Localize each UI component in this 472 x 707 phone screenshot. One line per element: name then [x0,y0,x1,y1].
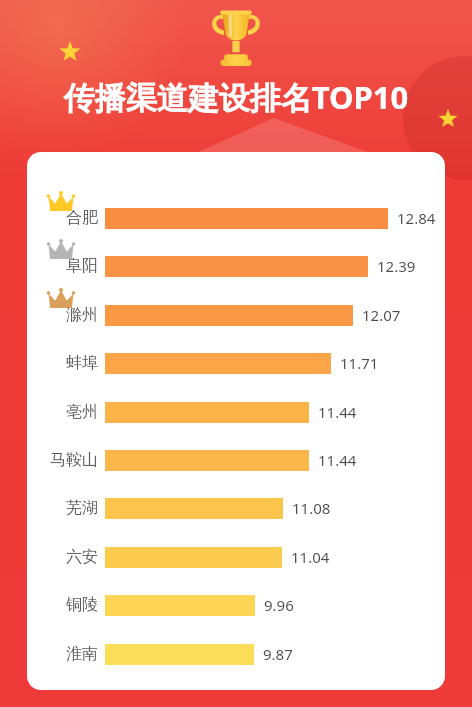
button[interactable]: 六安 [27,540,445,574]
staticText: 阜阳 [66,256,98,276]
staticText: 11.71 [340,353,379,373]
button[interactable]: 合肥 [27,152,445,690]
staticText: 12.07 [362,305,401,325]
staticText: 铜陵 [66,595,98,615]
staticText: 11.44 [318,450,357,470]
button[interactable]: 铜陵 [27,588,445,622]
other: Trophy [206,6,266,72]
staticText: 马鞍山 [50,450,98,470]
staticText: 合肥 [66,208,98,228]
button[interactable]: 芜湖 [27,491,445,525]
staticText: 芜湖 [66,498,98,518]
button[interactable]: 合肥 [27,201,445,235]
staticText: 蚌埠 [66,353,98,373]
staticText: 12.84 [397,208,436,228]
staticText: 11.08 [292,498,331,518]
staticText: 9.96 [264,595,294,615]
staticText: 12.39 [377,256,416,276]
staticText: 亳州 [66,402,98,422]
button[interactable]: 滁州 [27,298,445,332]
staticText: 11.44 [318,402,357,422]
button[interactable]: 蚌埠 [27,346,445,380]
button[interactable]: 亳州 [27,395,445,429]
staticText: 淮南 [66,644,98,664]
staticText: 9.87 [263,644,293,664]
button[interactable]: 马鞍山 [27,443,445,477]
staticText: 传播渠道建设排名TOP10 [0,76,472,118]
button[interactable]: 阜阳 [27,249,445,283]
button[interactable]: 淮南 [27,637,445,671]
staticText: 滁州 [66,305,98,325]
staticText: 11.04 [291,547,330,567]
staticText: 六安 [66,547,98,567]
